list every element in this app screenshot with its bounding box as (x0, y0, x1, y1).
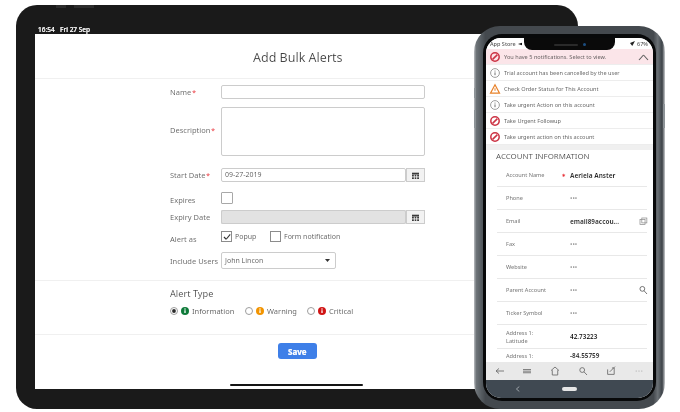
button[interactable]: Search (569, 362, 597, 380)
staticText: Start Date (170, 170, 206, 180)
staticText: 09-27-2019 (225, 170, 262, 180)
button[interactable]: Search parent account (639, 286, 647, 294)
staticText: Fri 27 Sep (60, 25, 91, 34)
staticText: John Lincon (225, 256, 264, 266)
button[interactable]: Address 1: (491, 325, 650, 348)
staticText: You have 5 notifications. Select to view… (504, 53, 607, 61)
staticText: Trial account has been cancelled by the … (504, 69, 620, 77)
staticText: -84.55759 (570, 351, 600, 360)
button[interactable]: Phone (491, 187, 650, 209)
staticText: Email (506, 217, 521, 225)
button[interactable]: Information (170, 306, 235, 316)
staticText: Name (170, 87, 192, 97)
button[interactable]: Popup (221, 231, 257, 242)
staticText: Include Users (170, 256, 219, 266)
staticText: ••• (570, 309, 578, 318)
staticText: Description (170, 125, 211, 135)
staticText: Take urgent action on this account (504, 133, 595, 141)
button[interactable]: John Lincon (221, 252, 336, 269)
button[interactable]: Fax (491, 233, 650, 255)
button[interactable]: Parent Account (491, 279, 650, 301)
button[interactable]: Trial account has been cancelled by the … (486, 65, 653, 80)
button[interactable]: Compose (597, 362, 625, 380)
button[interactable] (221, 85, 425, 99)
staticText: App Store (490, 40, 516, 47)
button[interactable]: Account Name (491, 164, 650, 186)
staticText: email89accou... (570, 217, 619, 226)
button[interactable]: Pick expiry date (406, 210, 425, 224)
button[interactable]: Take urgent Action on this account (486, 97, 653, 112)
button[interactable] (221, 107, 425, 156)
staticText: Critical (329, 306, 354, 316)
button[interactable]: Take urgent action on this account (486, 129, 653, 144)
button[interactable]: Copy email (640, 218, 647, 225)
button[interactable]: Warning (245, 306, 297, 316)
button[interactable]: Check Order Status for This Account (486, 81, 653, 96)
staticText: Address 1: (506, 329, 534, 337)
button[interactable]: Ticker Symbol (491, 302, 650, 324)
button[interactable]: Form notification (270, 231, 341, 242)
staticText: Account Name (506, 171, 545, 179)
button[interactable]: Email (491, 210, 650, 232)
staticText: Form notification (284, 232, 341, 242)
button[interactable]: Expires (221, 192, 233, 204)
button[interactable]: Home (541, 362, 569, 380)
button[interactable]: 09-27-2019 (221, 168, 406, 182)
staticText: Expiry Date (170, 212, 211, 222)
button[interactable]: Collapse notifications (638, 52, 648, 62)
staticText: 42.73223 (570, 332, 598, 341)
staticText: ACCOUNT INFORMATION (496, 151, 590, 162)
button[interactable]: You have 5 notifications. Select to view… (486, 49, 653, 64)
button[interactable]: Pick start date (406, 168, 425, 182)
staticText: Popup (235, 232, 257, 242)
staticText: 16:54 (38, 25, 55, 34)
staticText: Parent Account (506, 286, 547, 294)
staticText: Take Urgent Followup (504, 117, 562, 125)
staticText: ••• (570, 194, 578, 203)
staticText: Expires (170, 195, 196, 205)
staticText: Ticker Symbol (506, 309, 543, 317)
staticText: Alert as (170, 234, 197, 244)
staticText: Website (506, 263, 527, 271)
staticText: Alert Type (170, 287, 214, 300)
button[interactable]: Menu (513, 362, 541, 380)
staticText: * (192, 87, 197, 97)
staticText: ••• (570, 263, 578, 272)
staticText: * (206, 170, 211, 180)
staticText: Aeriela Anster (570, 171, 616, 180)
staticText: ✱ (562, 173, 566, 178)
button[interactable]: Back (486, 362, 513, 380)
button[interactable]: Website (491, 256, 650, 278)
staticText: Phone (506, 194, 523, 202)
staticText: Address 1: (506, 352, 534, 360)
staticText: ••• (570, 286, 578, 295)
staticText: 67% (637, 40, 648, 47)
staticText: Add Bulk Alerts (253, 49, 343, 66)
staticText: Save (288, 346, 307, 357)
staticText: Information (192, 306, 235, 316)
button[interactable]: Address 1: (491, 349, 650, 362)
button[interactable]: Critical (307, 306, 354, 316)
staticText: Warning (267, 306, 297, 316)
staticText: ••• (570, 240, 578, 249)
staticText: Check Order Status for This Account (504, 85, 599, 93)
staticText: Fax (506, 240, 516, 248)
staticText: Latitude (506, 337, 528, 345)
button[interactable]: Take Urgent Followup (486, 113, 653, 128)
button[interactable]: Back (514, 385, 522, 393)
staticText: * (211, 125, 216, 135)
staticText: Take urgent Action on this account (504, 101, 595, 109)
button[interactable]: Save (278, 343, 317, 359)
